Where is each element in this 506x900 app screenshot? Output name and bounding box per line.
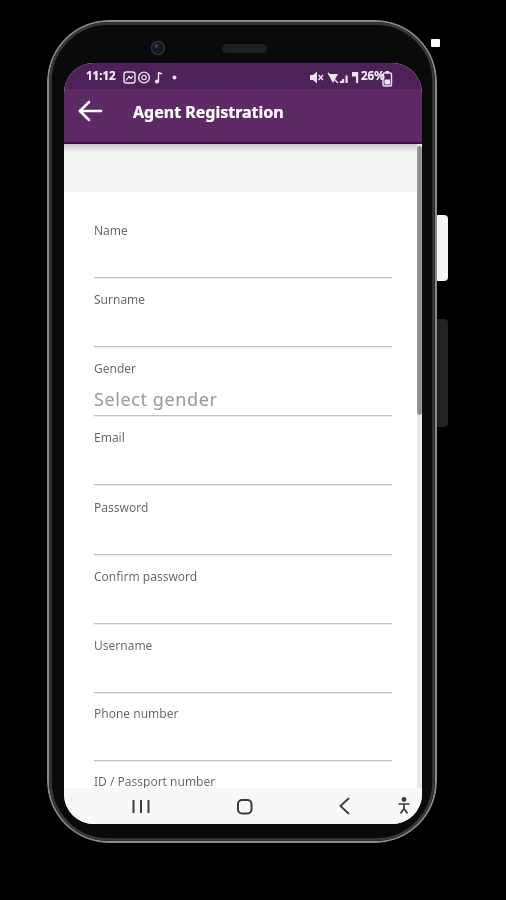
button[interactable] bbox=[88, 562, 398, 624]
staticText: Username bbox=[94, 637, 153, 653]
button[interactable] bbox=[88, 354, 398, 416]
button[interactable] bbox=[88, 767, 398, 824]
button[interactable] bbox=[116, 789, 166, 823]
staticText: 26% bbox=[361, 68, 385, 84]
staticText: ID / Passport number bbox=[94, 773, 216, 789]
button[interactable] bbox=[88, 285, 398, 347]
staticText: 11:12 bbox=[86, 68, 116, 84]
button[interactable] bbox=[319, 789, 369, 823]
button[interactable] bbox=[88, 216, 398, 278]
button[interactable] bbox=[382, 789, 422, 823]
staticText: Phone number bbox=[94, 705, 179, 721]
button[interactable] bbox=[88, 631, 398, 693]
button[interactable] bbox=[64, 89, 422, 144]
button[interactable] bbox=[88, 423, 398, 485]
button[interactable] bbox=[219, 789, 269, 823]
staticText: Agent Registration bbox=[133, 101, 284, 123]
button[interactable]: Select gender bbox=[94, 387, 218, 412]
button[interactable] bbox=[88, 699, 398, 761]
staticText: Password bbox=[94, 499, 149, 515]
staticText: Gender bbox=[94, 360, 137, 376]
staticText: Email bbox=[94, 429, 125, 445]
button[interactable] bbox=[70, 91, 118, 141]
staticText: Confirm password bbox=[94, 568, 198, 584]
staticText: Name bbox=[94, 222, 128, 238]
staticText: Surname bbox=[94, 291, 146, 307]
button[interactable] bbox=[88, 493, 398, 555]
